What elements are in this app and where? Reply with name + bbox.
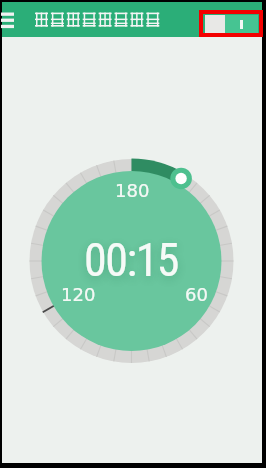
staticText: 180 — [115, 180, 150, 201]
button[interactable] — [2, 2, 22, 37]
button[interactable] — [199, 10, 263, 37]
staticText: 60 — [185, 284, 208, 305]
staticText: 120 — [61, 284, 96, 305]
staticText: 00:15 — [84, 233, 179, 287]
